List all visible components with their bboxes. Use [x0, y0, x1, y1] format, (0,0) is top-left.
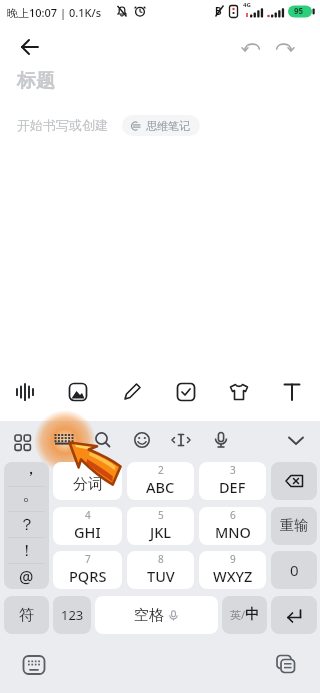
staticText: TUV	[147, 566, 175, 586]
button[interactable]	[271, 462, 317, 500]
staticText: 3	[230, 463, 236, 477]
button[interactable]: 7	[53, 551, 122, 589]
button[interactable]: 2	[127, 462, 194, 500]
button[interactable]: 3	[199, 462, 266, 500]
staticText: B	[215, 4, 222, 18]
button[interactable]	[222, 375, 256, 409]
staticText: MNO	[215, 522, 251, 542]
staticText: WXYZ	[213, 566, 253, 586]
button[interactable]: 9	[199, 551, 266, 589]
staticText: 8	[158, 552, 164, 566]
button[interactable]	[271, 596, 317, 634]
button[interactable]	[165, 425, 197, 457]
button[interactable]	[6, 425, 38, 457]
button[interactable]	[14, 33, 46, 65]
staticText: 分词	[73, 475, 103, 494]
button[interactable]: 。	[4, 487, 49, 511]
staticText: 晚上10:07 | 0.1K/s	[7, 5, 102, 20]
staticText: 6	[230, 508, 236, 522]
button[interactable]	[22, 653, 46, 677]
staticText: @	[19, 566, 34, 588]
button[interactable]	[126, 425, 158, 457]
button[interactable]: 英/中	[222, 596, 267, 634]
staticText: 重输	[280, 517, 308, 535]
staticText: 123	[61, 606, 84, 624]
button[interactable]	[48, 425, 80, 457]
button[interactable]: @	[4, 564, 49, 589]
staticText: 4G	[243, 1, 251, 9]
staticText: 0	[290, 560, 299, 580]
button[interactable]	[115, 375, 149, 409]
button[interactable]	[275, 375, 309, 409]
button[interactable]	[61, 375, 95, 409]
staticText: ABC	[146, 477, 175, 497]
button[interactable]	[238, 33, 266, 61]
button[interactable]: ？	[4, 512, 49, 537]
button[interactable]: 思维笔记	[122, 115, 200, 136]
button[interactable]	[205, 425, 237, 457]
button[interactable]	[8, 375, 42, 409]
staticText: 空格	[134, 606, 164, 625]
staticText: GHI	[74, 522, 101, 542]
button[interactable]	[87, 425, 119, 457]
button[interactable]	[274, 653, 298, 677]
staticText: 标题	[17, 69, 55, 93]
button[interactable]: ！	[4, 538, 49, 563]
button[interactable]	[270, 33, 298, 61]
staticText: 5	[158, 508, 164, 522]
staticText: ！	[19, 541, 35, 561]
button[interactable]: 空格	[95, 596, 218, 634]
button[interactable]: 8	[127, 551, 194, 589]
button[interactable]	[169, 375, 203, 409]
button[interactable]: 分词	[53, 462, 122, 500]
staticText: JKL	[150, 522, 172, 542]
staticText: 开始书写或创建	[17, 117, 108, 133]
button[interactable]: 123	[53, 596, 91, 634]
button[interactable]: ，	[4, 462, 49, 486]
staticText: ，	[22, 462, 40, 480]
staticText: 2	[158, 463, 164, 477]
staticText: 9	[230, 552, 236, 566]
staticText: 思维笔记	[146, 119, 190, 133]
staticText: ？	[19, 515, 35, 535]
button[interactable]: 0	[271, 551, 317, 589]
button[interactable]: 重输	[271, 507, 317, 545]
staticText: 4	[85, 508, 91, 522]
staticText: 符	[19, 606, 34, 625]
button[interactable]: 5	[127, 507, 194, 545]
staticText: 95	[294, 5, 304, 16]
button[interactable]	[280, 425, 312, 457]
staticText: PQRS	[69, 566, 107, 586]
button[interactable]: 符	[4, 596, 49, 634]
staticText: DEF	[219, 477, 246, 497]
staticText: 英/中	[230, 606, 260, 624]
button[interactable]: 4	[53, 507, 122, 545]
button[interactable]: 6	[199, 507, 266, 545]
staticText: 。	[22, 483, 40, 506]
staticText: 7	[85, 552, 91, 566]
